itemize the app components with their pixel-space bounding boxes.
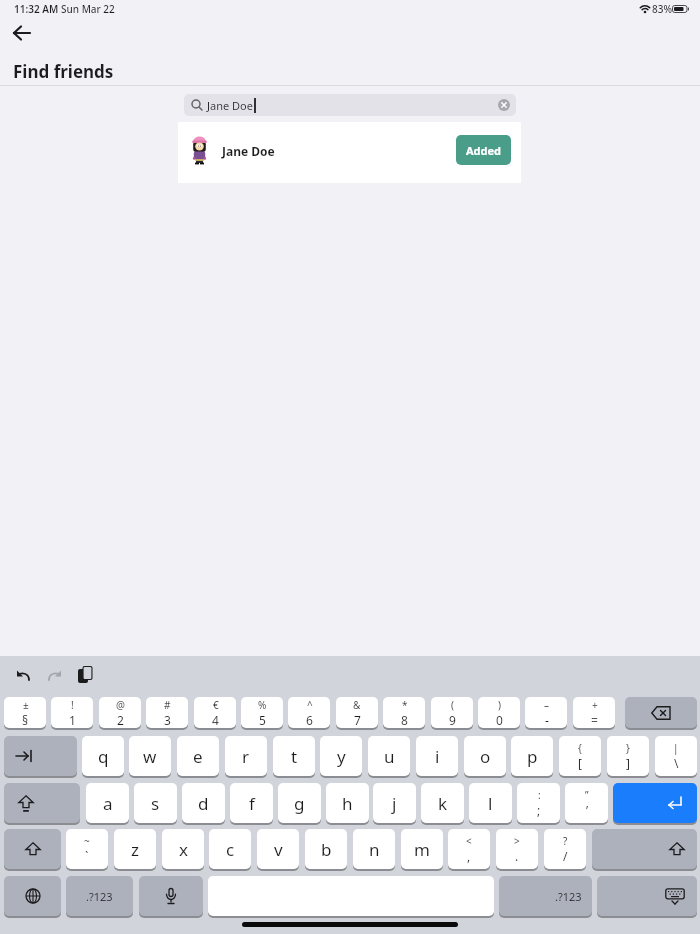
- button[interactable]: [625, 697, 697, 728]
- button[interactable]: h: [326, 783, 369, 823]
- button[interactable]: %: [241, 697, 283, 728]
- button[interactable]: [4, 829, 61, 869]
- staticText: :: [538, 788, 541, 802]
- button[interactable]: (: [431, 697, 473, 728]
- button[interactable]: x: [162, 829, 204, 869]
- button[interactable]: [45, 668, 62, 682]
- button[interactable]: ?: [544, 829, 586, 869]
- staticText: 0: [496, 712, 503, 728]
- button[interactable]: ^: [288, 697, 330, 728]
- button[interactable]: t: [273, 736, 315, 776]
- button[interactable]: r: [225, 736, 267, 776]
- staticText: {: [578, 741, 582, 755]
- button[interactable]: v: [257, 829, 299, 869]
- button[interactable]: f: [230, 783, 273, 823]
- staticText: s: [151, 792, 160, 815]
- button[interactable]: .?123: [66, 876, 133, 916]
- button[interactable]: [613, 783, 697, 823]
- staticText: v: [274, 838, 283, 861]
- staticText: |: [673, 741, 679, 755]
- button[interactable]: Added: [456, 135, 511, 165]
- staticText: z: [131, 838, 139, 861]
- staticText: c: [226, 838, 235, 861]
- button[interactable]: €: [194, 697, 236, 728]
- button[interactable]: g: [278, 783, 321, 823]
- button[interactable]: >: [496, 829, 538, 869]
- button[interactable]: u: [368, 736, 410, 776]
- button[interactable]: Jane Doe: [178, 122, 521, 183]
- button[interactable]: {: [559, 736, 601, 776]
- staticText: a: [103, 792, 113, 815]
- button[interactable]: }: [607, 736, 649, 776]
- button[interactable]: [4, 736, 77, 776]
- staticText: e: [193, 745, 203, 768]
- button[interactable]: [16, 668, 33, 682]
- staticText: 2: [117, 712, 124, 728]
- button[interactable]: w: [129, 736, 171, 776]
- button[interactable]: #: [146, 697, 188, 728]
- staticText: x: [179, 838, 188, 861]
- button[interactable]: +: [573, 697, 615, 728]
- button[interactable]: n: [353, 829, 395, 869]
- button[interactable]: –: [525, 697, 567, 728]
- button[interactable]: b: [305, 829, 347, 869]
- button[interactable]: ~: [66, 829, 108, 869]
- button[interactable]: [4, 783, 80, 823]
- staticText: 8: [401, 712, 408, 728]
- staticText: ]: [626, 755, 630, 771]
- button[interactable]: <: [448, 829, 490, 869]
- staticText: +: [592, 698, 598, 712]
- button[interactable]: [12, 25, 32, 41]
- staticText: w: [143, 745, 157, 768]
- button[interactable]: !: [51, 697, 93, 728]
- staticText: ’: [586, 802, 589, 818]
- button[interactable]: :: [517, 783, 560, 823]
- button[interactable]: &: [336, 697, 378, 728]
- staticText: Added: [466, 143, 502, 158]
- button[interactable]: *: [383, 697, 425, 728]
- button[interactable]: [208, 876, 494, 916]
- button[interactable]: i: [416, 736, 458, 776]
- button[interactable]: [78, 666, 94, 684]
- staticText: }: [626, 741, 630, 755]
- button[interactable]: c: [209, 829, 251, 869]
- staticText: y: [337, 745, 346, 768]
- button[interactable]: .?123: [499, 876, 592, 916]
- button[interactable]: k: [421, 783, 464, 823]
- staticText: [: [578, 755, 582, 771]
- staticText: r: [242, 745, 250, 768]
- button[interactable]: m: [401, 829, 443, 869]
- button[interactable]: [4, 876, 61, 916]
- staticText: f: [249, 792, 255, 815]
- button[interactable]: o: [464, 736, 506, 776]
- button[interactable]: ±: [4, 697, 46, 728]
- button[interactable]: @: [99, 697, 141, 728]
- button[interactable]: a: [86, 783, 129, 823]
- button[interactable]: p: [511, 736, 553, 776]
- staticText: ”: [585, 788, 589, 802]
- staticText: 4: [212, 712, 219, 728]
- button[interactable]: [592, 829, 697, 869]
- staticText: %: [258, 698, 267, 712]
- button[interactable]: Jane Doe: [184, 94, 516, 116]
- staticText: ,: [467, 848, 471, 864]
- button[interactable]: l: [469, 783, 512, 823]
- button[interactable]: [139, 876, 203, 916]
- button[interactable]: ”: [565, 783, 608, 823]
- button[interactable]: y: [320, 736, 362, 776]
- button[interactable]: q: [82, 736, 124, 776]
- staticText: j: [392, 792, 397, 815]
- button[interactable]: d: [182, 783, 225, 823]
- staticText: >: [514, 834, 520, 848]
- button[interactable]: ): [478, 697, 520, 728]
- button[interactable]: e: [177, 736, 219, 776]
- button[interactable]: s: [134, 783, 177, 823]
- staticText: 5: [259, 712, 266, 728]
- staticText: !: [71, 698, 74, 712]
- button[interactable]: [498, 99, 510, 111]
- button[interactable]: [597, 876, 697, 916]
- staticText: .?123: [86, 889, 113, 904]
- button[interactable]: |: [655, 736, 697, 776]
- button[interactable]: z: [114, 829, 156, 869]
- button[interactable]: j: [373, 783, 416, 823]
